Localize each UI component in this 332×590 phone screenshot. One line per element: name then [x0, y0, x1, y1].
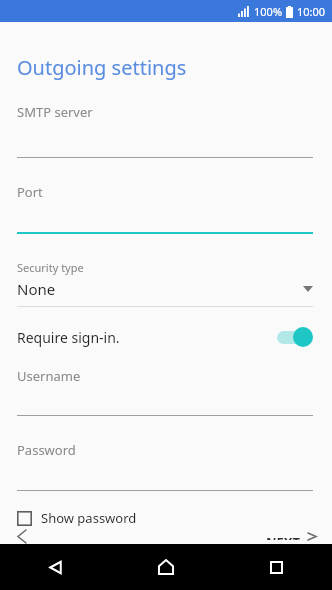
staticText: Port [17, 183, 43, 201]
button[interactable]: Home [110, 544, 221, 590]
button[interactable]: None [0, 279, 332, 299]
button[interactable]: Back [0, 544, 110, 590]
button[interactable]: Show password [0, 507, 145, 529]
button[interactable]: Require sign-in toggle [275, 326, 313, 348]
staticText: Show password [41, 509, 137, 527]
staticText: NEXT [266, 533, 301, 540]
button[interactable]: Previous [8, 529, 36, 544]
button[interactable]: Require sign-in. [0, 321, 332, 353]
staticText: Username [17, 367, 81, 385]
staticText: Password [17, 441, 76, 459]
staticText: 10:00 [297, 4, 326, 19]
staticText: Security type [17, 260, 84, 275]
staticText: SMTP server [17, 103, 93, 121]
button[interactable]: Recent apps [221, 544, 332, 590]
staticText: Outgoing settings [17, 54, 187, 81]
staticText: 100% [254, 4, 283, 19]
staticText: Require sign-in. [17, 328, 120, 347]
button[interactable]: NEXT [260, 529, 322, 544]
staticText: None [17, 279, 56, 299]
